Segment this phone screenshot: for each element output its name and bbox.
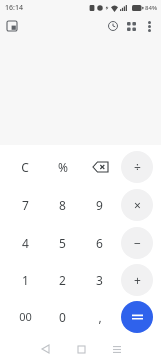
button[interactable]: 9 — [81, 186, 118, 224]
button[interactable]: Recent apps — [99, 338, 135, 360]
staticText: 4 — [22, 235, 29, 251]
button[interactable]: 5 — [44, 224, 81, 261]
button[interactable]: 3 — [81, 261, 118, 298]
staticText: % — [58, 159, 68, 175]
staticText: 1 — [22, 272, 29, 288]
button[interactable]: Backspace — [85, 152, 115, 182]
button[interactable]: More options — [140, 17, 158, 35]
button[interactable]: Floating window — [4, 18, 20, 34]
button[interactable]: × — [121, 189, 153, 221]
button[interactable]: Home — [63, 338, 99, 360]
staticText: 8 — [59, 197, 66, 213]
staticText: ÷ — [134, 159, 141, 175]
button[interactable]: 0 — [44, 298, 81, 335]
button[interactable]: Unit converter — [122, 17, 140, 35]
button[interactable]: % — [44, 148, 81, 186]
staticText: × — [134, 197, 141, 213]
button[interactable]: ÷ — [121, 151, 153, 183]
button[interactable]: Equals — [121, 301, 153, 333]
staticText: 00 — [19, 309, 32, 324]
staticText: 5 — [59, 235, 66, 251]
button[interactable]: 4 — [6, 224, 44, 261]
button[interactable]: 7 — [6, 186, 44, 224]
staticText: 3 — [96, 272, 103, 288]
button[interactable]: 00 — [6, 298, 44, 335]
button[interactable]: 6 — [81, 224, 118, 261]
staticText: C — [21, 159, 29, 175]
staticText: 0 — [59, 309, 66, 325]
button[interactable]: Back — [27, 338, 63, 360]
button[interactable]: 8 — [44, 186, 81, 224]
staticText: , — [98, 309, 102, 325]
staticText: 6 — [96, 235, 103, 251]
staticText: 7 — [22, 197, 29, 213]
button[interactable]: 2 — [44, 261, 81, 298]
staticText: 16:14 — [5, 3, 23, 13]
button[interactable]: 1 — [6, 261, 44, 298]
staticText: − — [134, 235, 141, 251]
button[interactable]: , — [81, 298, 118, 335]
button[interactable]: − — [121, 227, 153, 259]
staticText: + — [134, 272, 141, 288]
staticText: 84% — [145, 4, 157, 12]
staticText: 9 — [96, 197, 103, 213]
button[interactable]: History — [104, 17, 122, 35]
staticText: 2 — [59, 272, 66, 288]
button[interactable]: C — [6, 148, 44, 186]
button[interactable]: + — [121, 264, 153, 296]
